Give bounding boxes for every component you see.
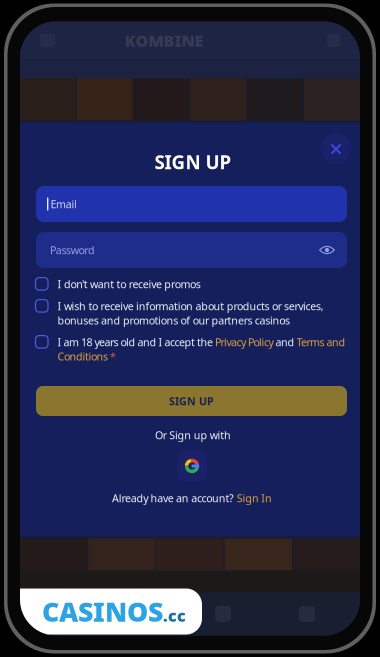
staticText: .cc [163,605,186,626]
staticText: KOMBINE [124,30,203,51]
button[interactable]: Close [320,133,351,164]
staticText: SIGN UP [169,394,214,408]
button[interactable]: Email [36,186,347,222]
button[interactable]: I don't want to receive promos [35,277,348,291]
button[interactable]: I am 18 years old and I accept the Priva… [35,335,348,360]
button[interactable]: SIGN UP [36,386,347,416]
staticText: Sign In [237,491,272,505]
staticText: CASINOS [42,594,163,629]
button[interactable]: Password [36,232,347,268]
staticText: I wish to receive information about prod… [57,299,324,327]
staticText: I don't want to receive promos [57,277,201,291]
staticText: I am 18 years old and I accept the Priva… [57,335,345,363]
button[interactable]: I wish to receive information about prod… [35,299,348,324]
staticText: Password [50,243,95,257]
staticText: Already have an account? [112,491,237,505]
staticText: Or Sign up with [155,428,231,442]
button[interactable]: Profile [276,592,338,635]
button[interactable]: Games [192,592,254,635]
staticText: Email [50,197,77,211]
button[interactable]: Sign In [237,491,272,505]
staticText: SIGN UP [154,150,231,174]
button[interactable]: Sign up with Google [177,450,207,481]
